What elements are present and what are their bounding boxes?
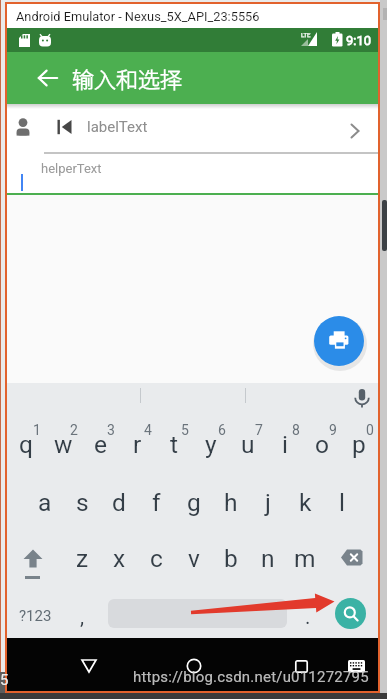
button[interactable]	[334, 540, 370, 576]
button[interactable]: b	[213, 540, 249, 576]
staticText: c	[150, 544, 163, 573]
staticText: f	[152, 488, 161, 517]
button[interactable]: f	[138, 484, 174, 520]
staticText: 8	[292, 422, 300, 436]
staticText: o	[315, 430, 329, 459]
button[interactable]: ,	[68, 602, 96, 632]
staticText: l	[339, 488, 345, 517]
button[interactable]	[314, 316, 364, 366]
button[interactable]: z	[64, 540, 100, 576]
staticText: t	[170, 430, 179, 459]
button[interactable]: j	[250, 484, 286, 520]
button[interactable]	[26, 56, 70, 100]
staticText: u	[241, 430, 255, 459]
button[interactable]	[71, 648, 107, 684]
staticText: p	[352, 430, 366, 459]
staticText: 7	[255, 422, 263, 436]
staticText: Android Emulator - Nexus_5X_API_23:5556	[16, 9, 260, 24]
staticText: s	[76, 488, 89, 517]
staticText: d	[112, 488, 126, 517]
staticText: .	[305, 605, 311, 629]
staticText: r	[133, 430, 142, 459]
button[interactable]: i	[267, 426, 303, 462]
button[interactable]: t	[156, 426, 192, 462]
button[interactable]	[283, 648, 319, 684]
button[interactable]: x	[101, 540, 137, 576]
staticText: LTE	[301, 31, 311, 38]
button[interactable]: m	[287, 540, 323, 576]
button[interactable]: s	[64, 484, 100, 520]
staticText: v	[188, 544, 200, 573]
staticText: z	[76, 544, 89, 573]
button[interactable]: q	[8, 426, 44, 462]
button[interactable]: o	[304, 426, 340, 462]
button[interactable]: c	[138, 540, 174, 576]
staticText: i	[282, 430, 288, 459]
staticText: j	[265, 488, 271, 517]
button[interactable]: a	[27, 484, 63, 520]
button[interactable]: r	[119, 426, 155, 462]
button[interactable]: l	[324, 484, 360, 520]
staticText: helperText	[41, 161, 102, 176]
button[interactable]: u	[230, 426, 266, 462]
staticText: 1	[33, 422, 41, 436]
staticText: m	[294, 544, 316, 573]
button[interactable]	[340, 650, 372, 682]
staticText: b	[224, 544, 238, 573]
button[interactable]: ?123	[10, 602, 60, 630]
button[interactable]: p	[341, 426, 377, 462]
button[interactable]: k	[287, 484, 323, 520]
staticText: a	[38, 488, 52, 517]
staticText: ?123	[19, 607, 52, 625]
staticText: 输入和选择	[72, 62, 183, 94]
button[interactable]	[335, 598, 366, 629]
staticText: e	[94, 430, 107, 459]
button[interactable]: v	[176, 540, 212, 576]
staticText: 4	[144, 422, 152, 436]
staticText: h	[224, 488, 238, 517]
staticText: labelText	[87, 118, 148, 136]
button[interactable]: y	[193, 426, 229, 462]
button[interactable]: w	[45, 426, 81, 462]
staticText: g	[187, 488, 201, 517]
staticText: 5	[181, 422, 189, 436]
staticText: q	[19, 430, 33, 459]
button[interactable]: .	[300, 602, 316, 632]
staticText: n	[261, 544, 275, 573]
staticText: 0	[366, 422, 374, 436]
button[interactable]: n	[250, 540, 286, 576]
staticText: k	[299, 488, 312, 517]
button[interactable]: e	[82, 426, 118, 462]
button[interactable]	[15, 540, 51, 576]
button[interactable]: d	[101, 484, 137, 520]
staticText: 2	[70, 422, 78, 436]
staticText: w	[54, 430, 73, 459]
button[interactable]	[108, 599, 287, 628]
staticText: ,	[80, 605, 85, 629]
staticText: 6	[218, 422, 226, 436]
staticText: 3	[107, 422, 115, 436]
staticText: 5	[0, 671, 9, 689]
button[interactable]: h	[213, 484, 249, 520]
button[interactable]: labelText	[7, 110, 378, 150]
button[interactable]: g	[176, 484, 212, 520]
staticText: 9	[329, 422, 337, 436]
staticText: y	[205, 430, 217, 459]
button[interactable]	[176, 648, 212, 684]
staticText: 9:10	[346, 33, 372, 48]
staticText: https://blog.csdn.net/u011272795	[133, 668, 369, 686]
staticText: x	[113, 544, 126, 573]
